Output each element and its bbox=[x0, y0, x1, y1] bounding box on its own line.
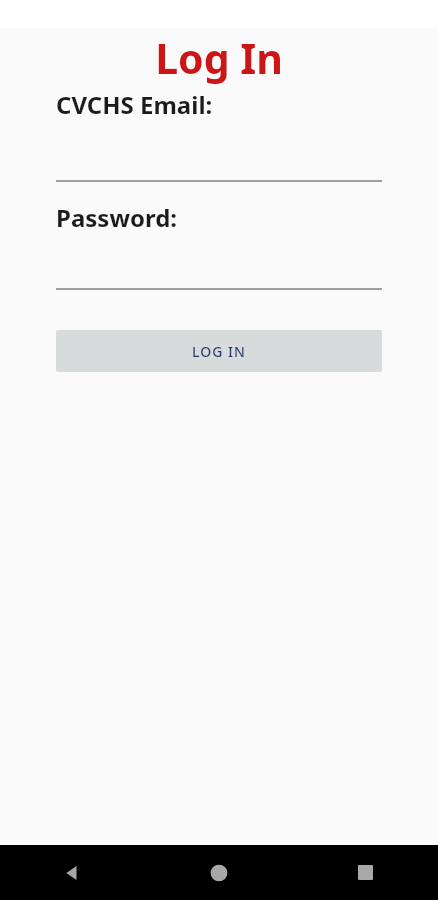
staticText: LOG IN bbox=[192, 342, 246, 361]
button[interactable] bbox=[0, 234, 438, 290]
button[interactable]: Recent apps bbox=[292, 845, 438, 900]
staticText: Log In bbox=[155, 30, 283, 86]
button[interactable] bbox=[0, 118, 438, 182]
staticText: CVCHS Email: bbox=[56, 88, 213, 118]
button[interactable]: Back bbox=[0, 845, 146, 900]
staticText: Password: bbox=[56, 201, 178, 234]
button[interactable]: LOG IN bbox=[56, 330, 382, 372]
button[interactable]: Home bbox=[146, 845, 292, 900]
